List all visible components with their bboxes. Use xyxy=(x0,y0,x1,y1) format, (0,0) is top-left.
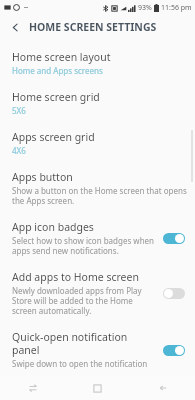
staticText: Quick-open notification panel xyxy=(12,330,155,357)
staticText: Swipe down to open the notification pane… xyxy=(12,358,155,369)
staticText: Apps button xyxy=(12,170,73,184)
staticText: Add apps to Home screen xyxy=(12,270,139,284)
button[interactable]: Navigate up xyxy=(7,19,23,35)
button[interactable]: Home xyxy=(65,376,130,400)
button[interactable]: Home screen layout xyxy=(0,43,195,83)
button[interactable]: Quick-open notification panel xyxy=(0,323,195,376)
button[interactable]: Off xyxy=(161,284,187,302)
staticText: 5X6 xyxy=(12,105,26,116)
button[interactable]: Back xyxy=(130,376,195,400)
button[interactable]: Recent apps xyxy=(0,376,65,400)
button[interactable]: Apps button xyxy=(0,163,195,213)
staticText: 11:56 pm xyxy=(161,3,192,13)
staticText: 4X6 xyxy=(12,145,26,156)
button[interactable]: On xyxy=(161,229,187,247)
staticText: Select how to show icon badges when apps… xyxy=(12,235,155,256)
staticText: Apps screen grid xyxy=(12,130,95,144)
button[interactable]: Add apps to Home screen xyxy=(0,263,195,323)
staticText: Home screen grid xyxy=(12,90,100,104)
button[interactable]: Apps screen grid xyxy=(0,123,195,163)
staticText: Home and Apps screens xyxy=(12,65,103,76)
button[interactable]: On xyxy=(161,341,187,359)
staticText: App icon badges xyxy=(12,220,94,234)
staticText: Newly downloaded apps from Play Store wi… xyxy=(12,285,155,316)
button[interactable]: Home screen grid xyxy=(0,83,195,123)
staticText: Home screen layout xyxy=(12,50,111,64)
staticText: Show a button on the Home screen that op… xyxy=(12,185,187,206)
staticText: HOME SCREEN SETTINGS xyxy=(29,20,157,34)
staticText: 93% xyxy=(138,3,152,13)
button[interactable]: App icon badges xyxy=(0,213,195,263)
